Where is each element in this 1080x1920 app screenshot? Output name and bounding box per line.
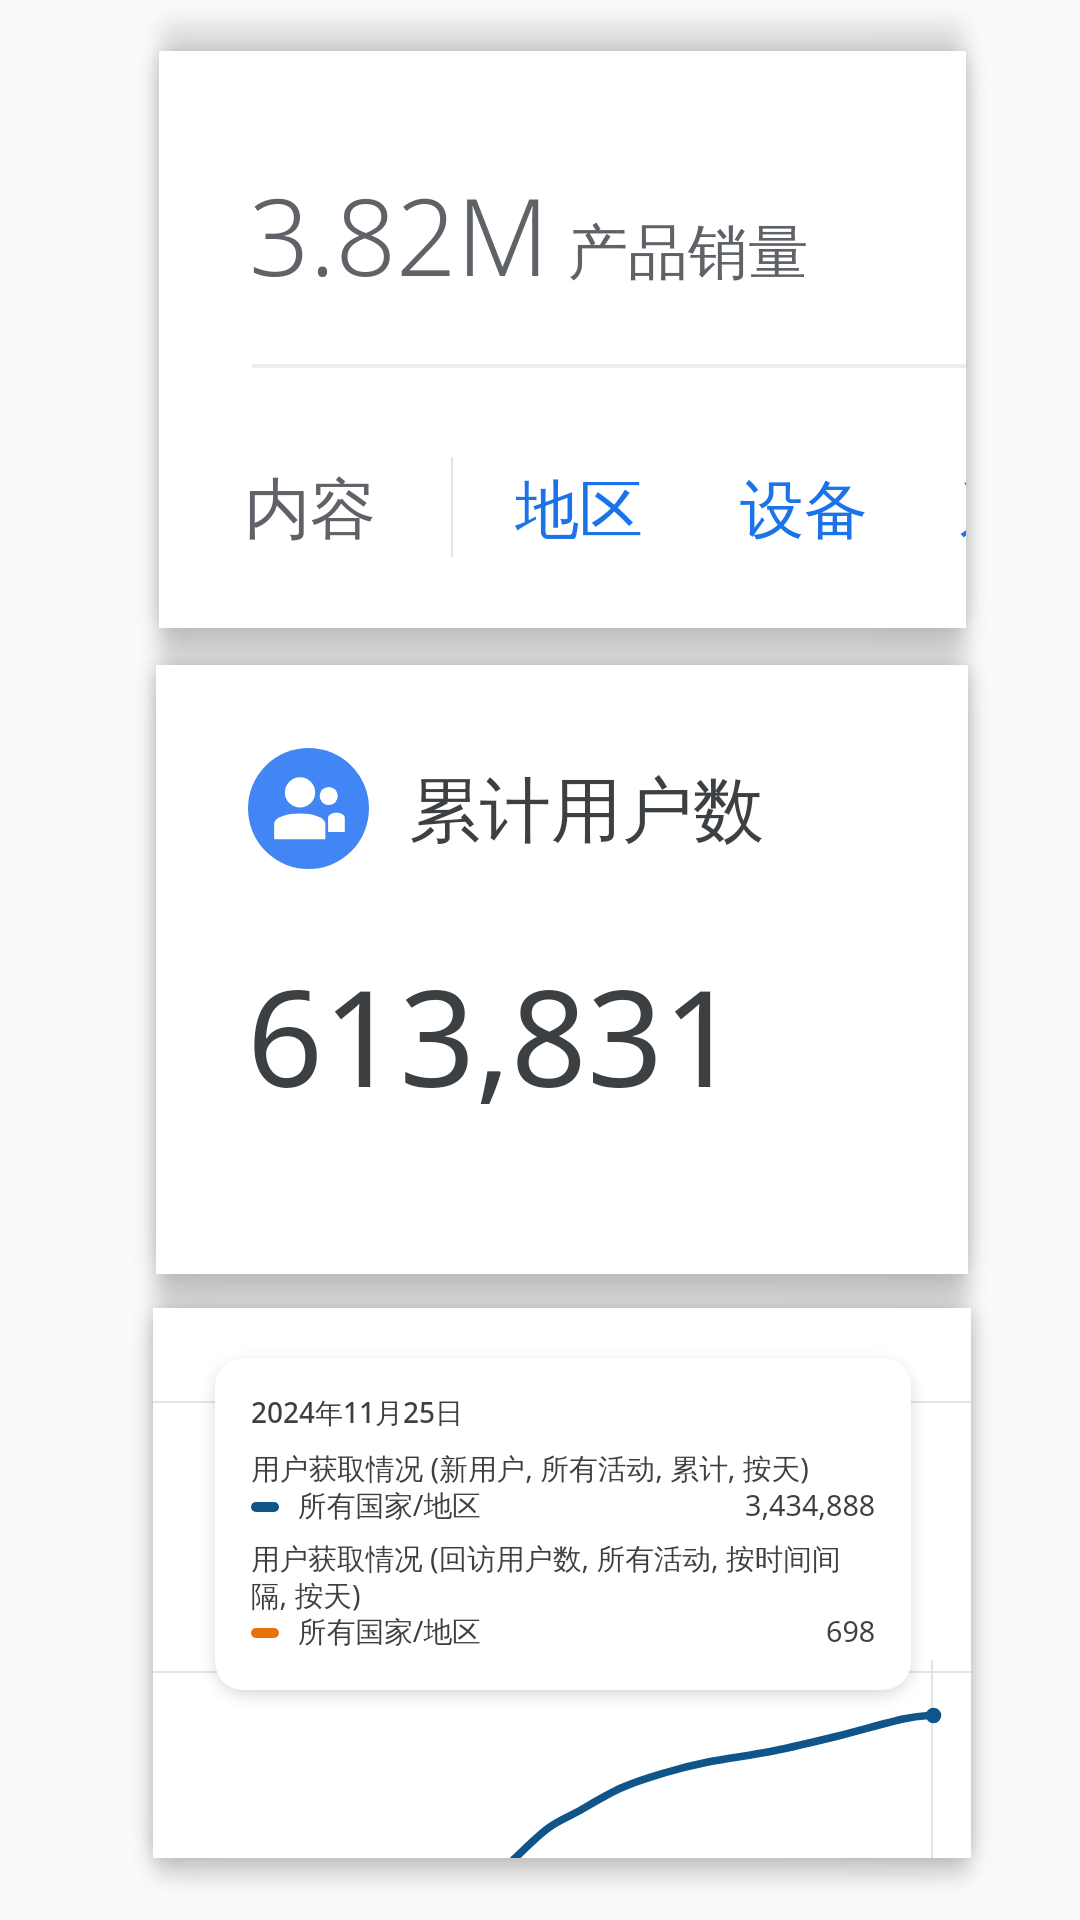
staticText: 地区	[515, 470, 643, 551]
button[interactable]: 系统	[951, 453, 966, 557]
button[interactable]: 累计用户数	[156, 665, 968, 1274]
staticText: 用户获取情况 (新用户, 所有活动, 累计, 按天)	[251, 1448, 809, 1487]
staticText: 设备	[740, 470, 868, 551]
button[interactable]: 3.82M	[159, 51, 966, 628]
button[interactable]: 设备	[732, 453, 882, 557]
staticText: 所有国家/地区	[298, 1611, 481, 1650]
staticText: 613,831	[247, 945, 740, 1126]
staticText: 累计用户数	[409, 767, 764, 856]
button[interactable]: 地区	[507, 453, 657, 557]
button[interactable]: 2024年11月25日	[153, 1308, 971, 1858]
button[interactable]: 内容	[243, 453, 393, 557]
staticText: 用户获取情况 (回访用户数, 所有活动, 按时间间	[251, 1538, 841, 1577]
staticText: 所有国家/地区	[298, 1485, 481, 1524]
staticText: 2024年11月25日	[251, 1393, 464, 1431]
other: 累计用户数	[248, 748, 369, 869]
staticText: 产品销量	[568, 215, 808, 291]
staticText: 698	[826, 1611, 876, 1650]
staticText: 系统	[959, 470, 966, 551]
staticText: 内容	[244, 468, 376, 551]
staticText: 隔, 按天)	[251, 1575, 361, 1614]
staticText: 3,434,888	[745, 1485, 876, 1524]
staticText: 3.82M	[249, 163, 549, 307]
